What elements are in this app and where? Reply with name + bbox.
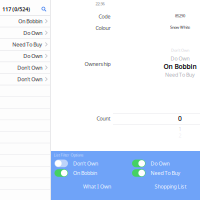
button[interactable]: Search [39,5,48,14]
button[interactable]: Need To Buy [132,169,196,177]
staticText: What I Own [83,183,111,190]
button[interactable]: What I Own [51,182,143,191]
staticText: List Filter Options [53,152,83,158]
staticText: 0 [178,114,182,123]
button[interactable]: Shopping List [143,182,198,191]
staticText: Don't Own [73,160,98,167]
staticText: 117 (0/524) [2,6,30,13]
staticText: On Bobbin [73,169,97,177]
staticText: Colour [95,24,110,32]
staticText: Need To Buy [150,169,180,177]
button[interactable]: Don't Own [54,159,132,168]
staticText: Need To Buy [12,41,42,48]
button[interactable]: Don't Own [0,74,50,85]
button[interactable]: Don't Own [0,62,50,74]
staticText: Do Own [23,29,42,36]
button[interactable]: On Bobbin [0,16,50,27]
staticText: 2 [178,132,181,139]
staticText: 1 [178,125,181,133]
staticText: Do Own [23,52,42,60]
staticText: On Bobbin [18,18,42,25]
staticText: 22:36 [95,1,104,6]
button[interactable]: Do Own [132,159,196,168]
staticText: On Bobbin [163,62,196,71]
staticText: Snow White [170,24,190,30]
staticText: Don't Own [171,47,189,53]
staticText: Shopping List [154,183,186,190]
staticText: Don't Own [17,76,42,83]
staticText: Need To Buy [165,71,195,78]
button[interactable]: Do Own [0,27,50,39]
button[interactable]: Do Own [0,50,50,62]
staticText: Do Own [150,160,169,167]
staticText: Code [98,13,110,20]
staticText: 85290 [175,13,185,18]
staticText: Ownership [84,60,110,68]
staticText: Count [96,115,110,122]
staticText: Do Own [170,55,189,62]
button[interactable]: On Bobbin [54,169,132,177]
button[interactable]: Need To Buy [0,39,50,50]
staticText: Don't Own [17,64,42,71]
